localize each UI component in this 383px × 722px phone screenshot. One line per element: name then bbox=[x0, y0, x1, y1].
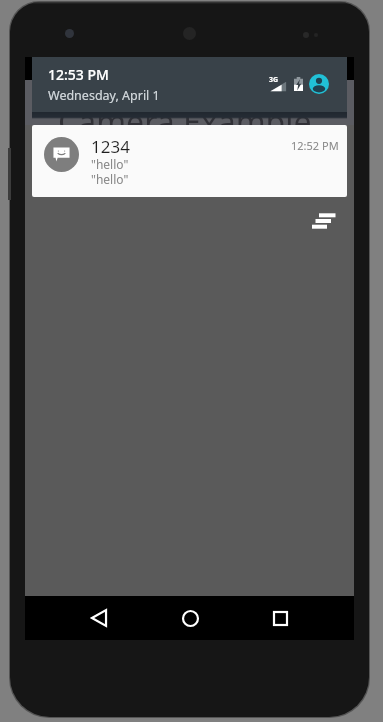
staticText: 1234 bbox=[91, 135, 130, 158]
button[interactable]: Clear all notifications bbox=[312, 207, 342, 235]
button[interactable]: Back bbox=[83, 596, 115, 640]
staticText: 12:53 PM bbox=[48, 65, 109, 84]
button[interactable]: Home bbox=[174, 596, 206, 640]
staticText: 3G bbox=[269, 75, 279, 85]
staticText: 12:52 PM bbox=[291, 138, 339, 153]
button[interactable]: 1234 bbox=[32, 125, 347, 197]
button[interactable]: User profile bbox=[309, 74, 329, 94]
staticText: "hello" bbox=[91, 156, 129, 172]
staticText: Camera Example bbox=[58, 100, 312, 125]
staticText: Wednesday, April 1 bbox=[48, 87, 160, 104]
button[interactable]: Recent apps bbox=[264, 596, 296, 640]
staticText: "hello" bbox=[91, 171, 129, 187]
